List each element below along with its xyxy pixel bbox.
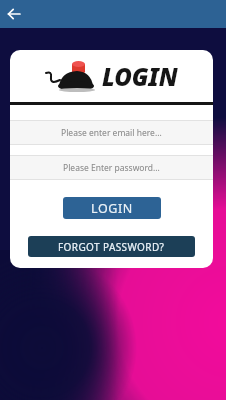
- button[interactable]: LOGIN: [63, 197, 161, 219]
- staticText: FORGOT PASSWORD?: [58, 240, 165, 254]
- staticText: Please Enter password...: [63, 162, 160, 174]
- staticText: LOGIN: [91, 200, 133, 217]
- staticText: LOGIN: [102, 60, 178, 93]
- staticText: Please enter email here...: [61, 127, 162, 139]
- button[interactable]: [0, 0, 28, 28]
- button[interactable]: Please enter email here...: [10, 120, 213, 145]
- button[interactable]: Please Enter password...: [10, 155, 213, 180]
- button[interactable]: FORGOT PASSWORD?: [28, 236, 195, 257]
